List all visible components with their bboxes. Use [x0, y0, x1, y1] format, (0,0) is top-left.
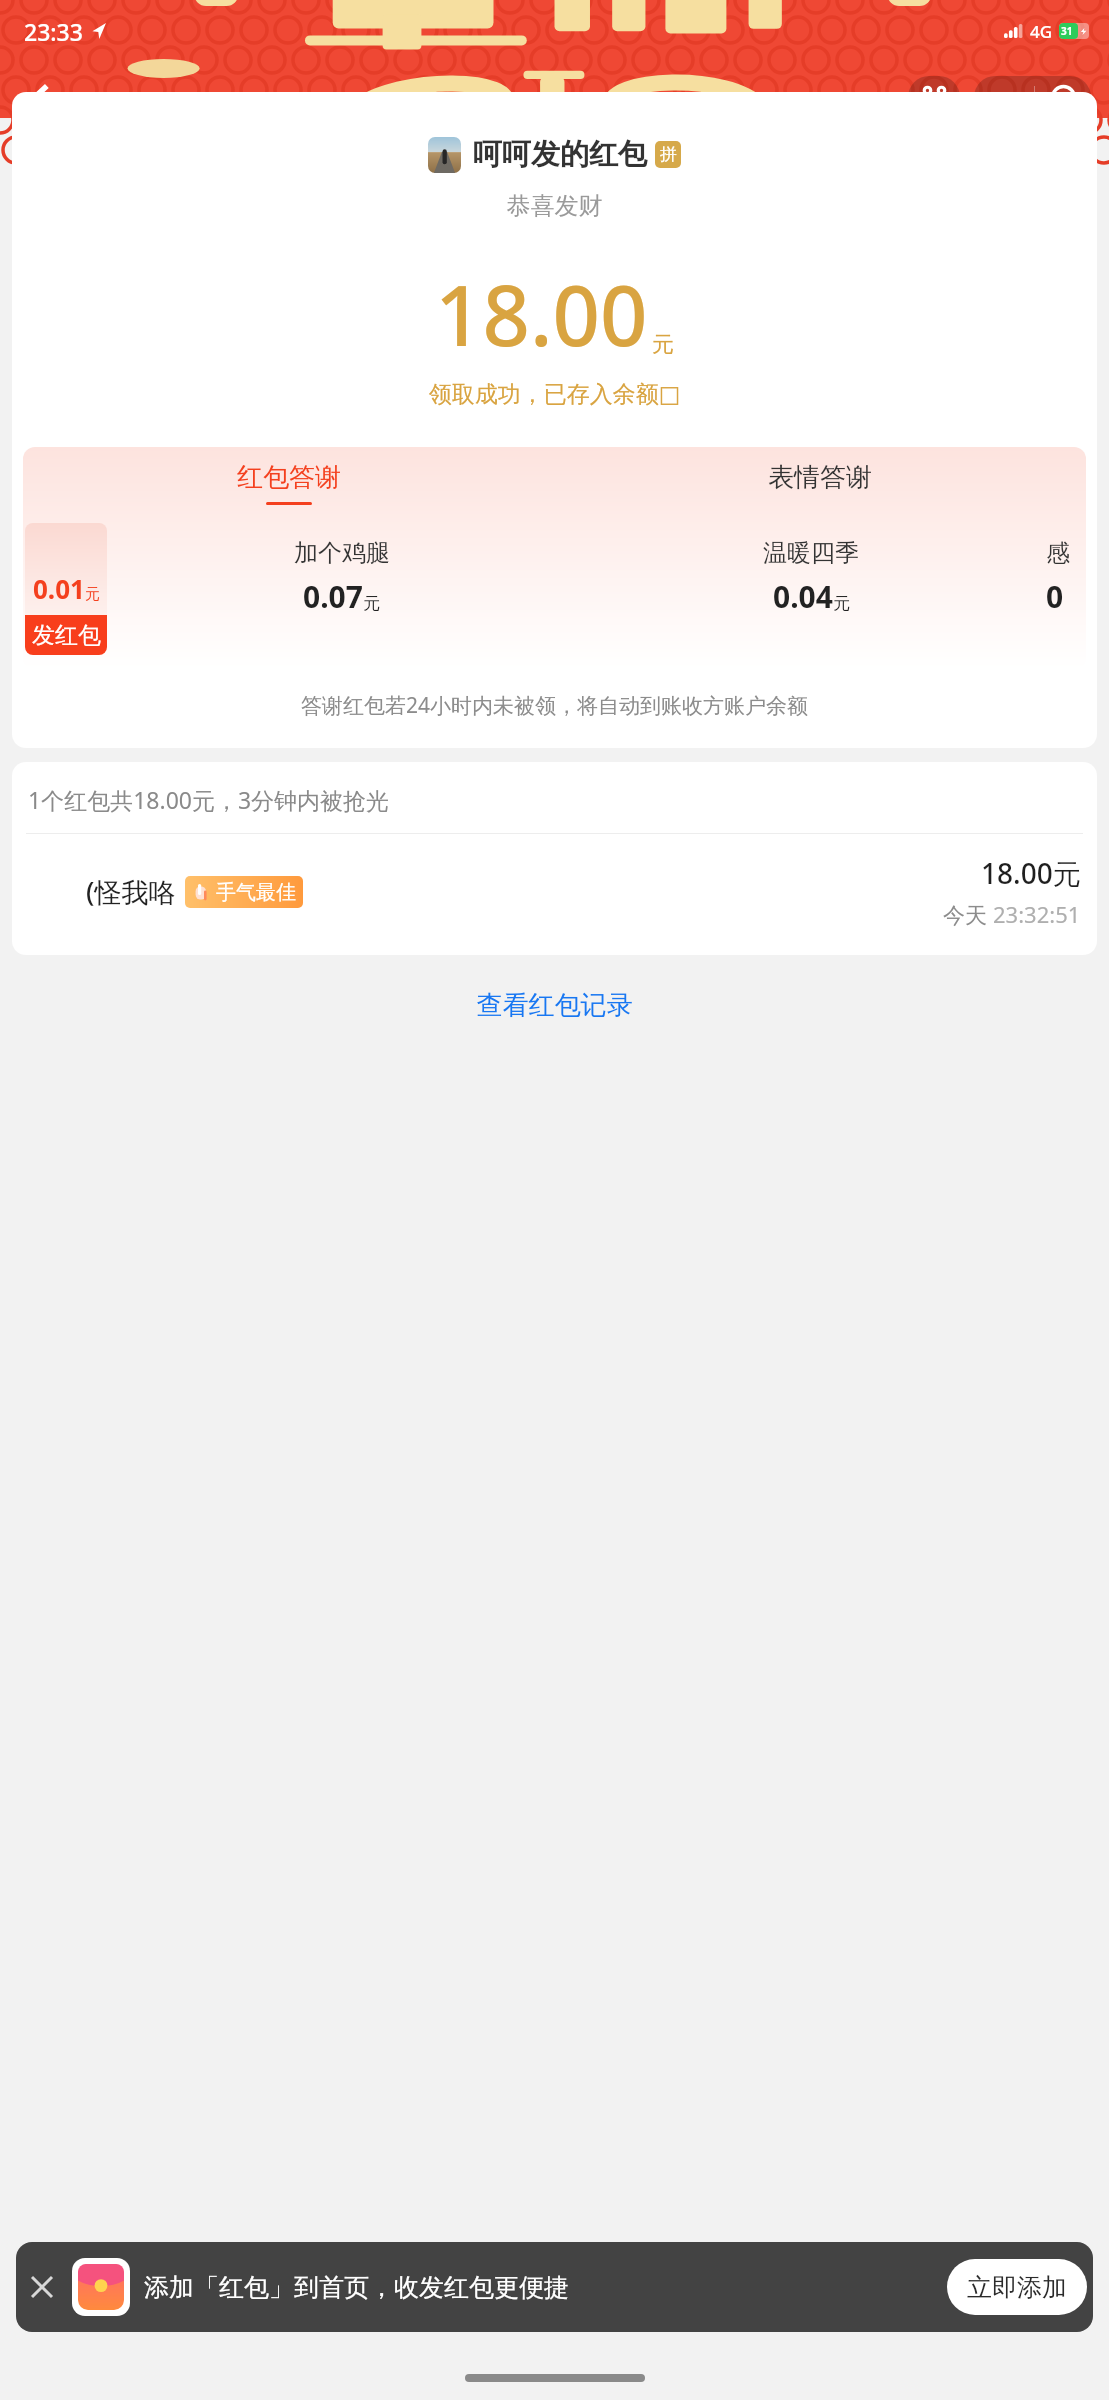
staticText: 答谢红包若24小时内未被领，将自动到账收方账户余额 [12, 691, 1097, 720]
button[interactable]: More options [974, 76, 1034, 118]
button[interactable]: 立即添加 [947, 2259, 1087, 2315]
staticText: 1个红包共18.00元，3分钟内被抢光 [28, 784, 390, 815]
staticText: 23:33 [24, 16, 83, 47]
button[interactable]: (怪我咯 [12, 834, 1097, 949]
button[interactable]: 查看红包记录 [0, 989, 1109, 1022]
staticText: 4G [1030, 20, 1053, 43]
staticText: 添加「红包」到首页，收发红包更便捷 [144, 2272, 935, 2303]
staticText: 拼 [660, 144, 677, 165]
staticText: 感 [1046, 538, 1070, 568]
staticText: 0.01 [33, 571, 85, 606]
staticText: 温暖四季 [763, 538, 859, 568]
staticText: (怪我咯 [86, 873, 176, 910]
button[interactable]: 加个鸡腿 [107, 538, 576, 617]
button[interactable]: 0.01 [25, 523, 107, 655]
button[interactable]: Scan [908, 76, 960, 118]
staticText: 加个鸡腿 [294, 538, 390, 568]
staticText: 元 [363, 593, 380, 614]
button[interactable]: Back [16, 76, 68, 118]
staticText: 表情答谢 [768, 461, 872, 494]
staticText: 元 [85, 585, 100, 604]
staticText: 今天 [943, 899, 993, 929]
button[interactable]: 感 [1046, 538, 1086, 617]
staticText: 恭喜发财 [12, 191, 1097, 221]
staticText: 元 [833, 593, 850, 614]
staticText: 31 [1061, 24, 1073, 38]
staticText: 立即添加 [967, 2272, 1067, 2303]
button[interactable]: 温暖四季 [576, 538, 1046, 617]
staticText: 手气最佳 [216, 880, 296, 905]
button[interactable]: Close [1035, 76, 1091, 118]
button[interactable]: Sender avatar [428, 137, 461, 173]
staticText: 红包答谢 [237, 461, 341, 494]
button[interactable]: Dismiss [16, 2261, 68, 2313]
staticText: 18.00 [435, 257, 648, 370]
staticText: 0.04 [773, 576, 833, 617]
button[interactable]: 表情答谢 [554, 461, 1086, 505]
staticText: 发红包 [32, 621, 101, 650]
staticText: 18.00元 [981, 854, 1081, 892]
staticText: 元 [652, 331, 674, 359]
staticText: 领取成功，已存入余额□ [12, 380, 1097, 409]
staticText: 呵呵发的红包 [473, 136, 647, 173]
staticText: 0.07 [303, 576, 363, 617]
staticText: 0 [1046, 576, 1064, 617]
staticText: 23:32:51 [993, 899, 1081, 929]
button[interactable]: 红包答谢 [23, 461, 554, 505]
